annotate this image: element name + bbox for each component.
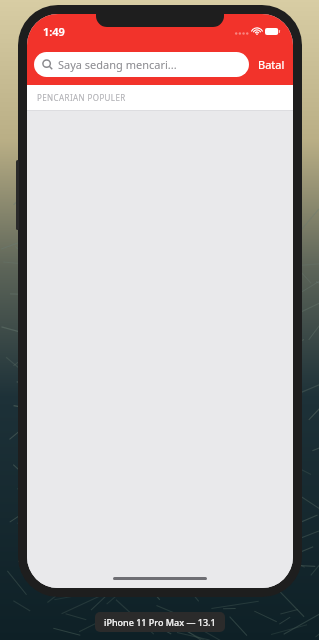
button[interactable]: Batal xyxy=(256,53,287,76)
staticText: PENCARIAN POPULER xyxy=(37,92,126,103)
button[interactable]: iPhone 11 Pro Max — 13.1 xyxy=(95,612,225,632)
staticText: 1:49 xyxy=(43,24,65,39)
staticText: Saya sedang mencari... xyxy=(58,57,177,72)
other: Search xyxy=(42,59,53,70)
button[interactable]: Search xyxy=(34,52,249,77)
staticText: iPhone 11 Pro Max — 13.1 xyxy=(104,616,216,628)
staticText: Batal xyxy=(258,57,285,72)
